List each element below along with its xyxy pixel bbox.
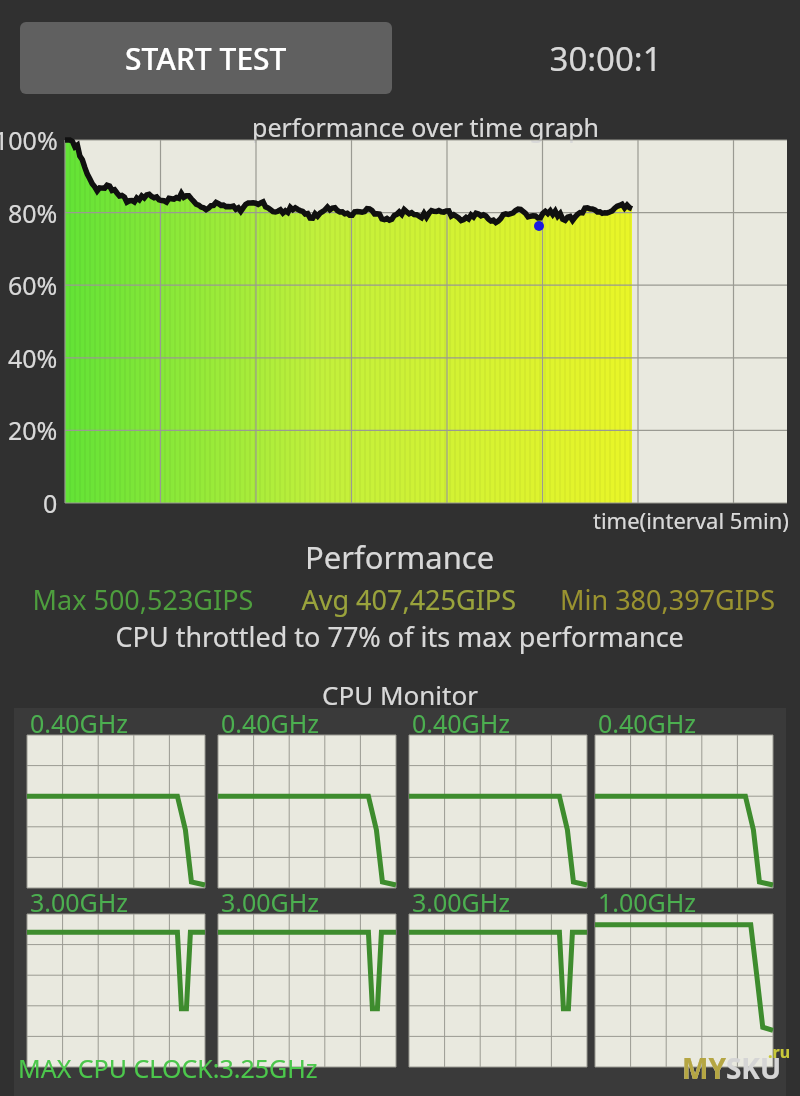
button[interactable]: Start Test [20, 22, 392, 94]
